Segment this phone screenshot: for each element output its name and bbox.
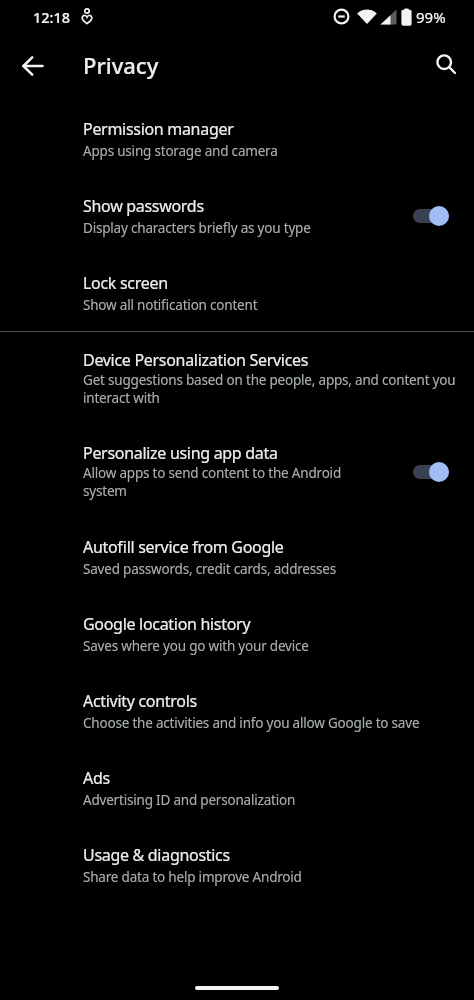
button[interactable]: Show passwords: [0, 177, 474, 254]
staticText: Privacy: [83, 50, 159, 80]
staticText: interact with: [83, 389, 160, 407]
button[interactable]: Ads: [0, 749, 474, 826]
staticText: Show passwords: [83, 195, 204, 217]
staticText: Activity controls: [83, 690, 197, 712]
staticText: system: [83, 482, 127, 500]
staticText: Choose the activities and info you allow…: [83, 714, 420, 732]
staticText: Saves where you go with your device: [83, 637, 309, 655]
staticText: 99%: [416, 7, 446, 27]
staticText: Apps using storage and camera: [83, 142, 278, 160]
staticText: Google location history: [83, 613, 251, 635]
staticText: Lock screen: [83, 272, 168, 294]
staticText: Get suggestions based on the people, app…: [83, 371, 456, 389]
staticText: Autofill service from Google: [83, 536, 284, 558]
staticText: Device Personalization Services: [83, 349, 309, 371]
button[interactable]: Permission manager: [0, 100, 474, 177]
staticText: Show all notification content: [83, 296, 258, 314]
staticText: Ads: [83, 767, 110, 789]
staticText: Advertising ID and personalization: [83, 791, 296, 809]
button[interactable]: [434, 52, 458, 76]
button[interactable]: Personalize using app data: [0, 425, 474, 518]
staticText: Display characters briefly as you type: [83, 219, 311, 237]
button[interactable]: Device Personalization Services: [0, 332, 474, 425]
button[interactable]: Google location history: [0, 595, 474, 672]
staticText: Allow apps to send content to the Androi…: [83, 464, 341, 482]
staticText: Saved passwords, credit cards, addresses: [83, 560, 336, 578]
button[interactable]: Usage & diagnostics: [0, 826, 474, 903]
staticText: 12:18: [33, 7, 71, 27]
staticText: Usage & diagnostics: [83, 844, 230, 866]
button[interactable]: [21, 54, 45, 78]
button[interactable]: Lock screen: [0, 254, 474, 331]
staticText: Permission manager: [83, 118, 234, 140]
staticText: Personalize using app data: [83, 442, 278, 464]
button[interactable]: [413, 206, 449, 226]
staticText: Share data to help improve Android: [83, 868, 302, 886]
button[interactable]: Activity controls: [0, 672, 474, 749]
button[interactable]: Autofill service from Google: [0, 518, 474, 595]
button[interactable]: [413, 462, 449, 482]
